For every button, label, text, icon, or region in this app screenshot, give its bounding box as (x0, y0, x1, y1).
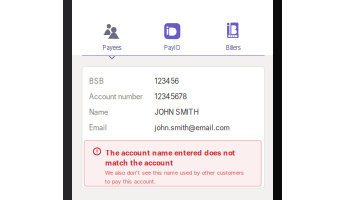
staticText: Billers (226, 44, 241, 51)
staticText: john.smith@email.com (154, 123, 229, 132)
staticText: The account name entered does not match … (105, 149, 235, 167)
staticText: 12345678 (154, 92, 186, 101)
button[interactable]: PayID (143, 0, 204, 55)
staticText: JOHN SMITH (154, 108, 198, 116)
staticText: Name (89, 108, 108, 116)
staticText: 123456 (154, 77, 178, 85)
staticText: Account number (89, 92, 143, 101)
staticText: Email (89, 123, 107, 132)
staticText: We also don't see this name used by othe… (105, 169, 244, 185)
button[interactable]: Billers (204, 0, 264, 55)
staticText: Payees (102, 44, 121, 51)
staticText: PayID (164, 44, 180, 51)
button[interactable]: Payees (82, 0, 143, 55)
staticText: BSB (89, 77, 104, 85)
